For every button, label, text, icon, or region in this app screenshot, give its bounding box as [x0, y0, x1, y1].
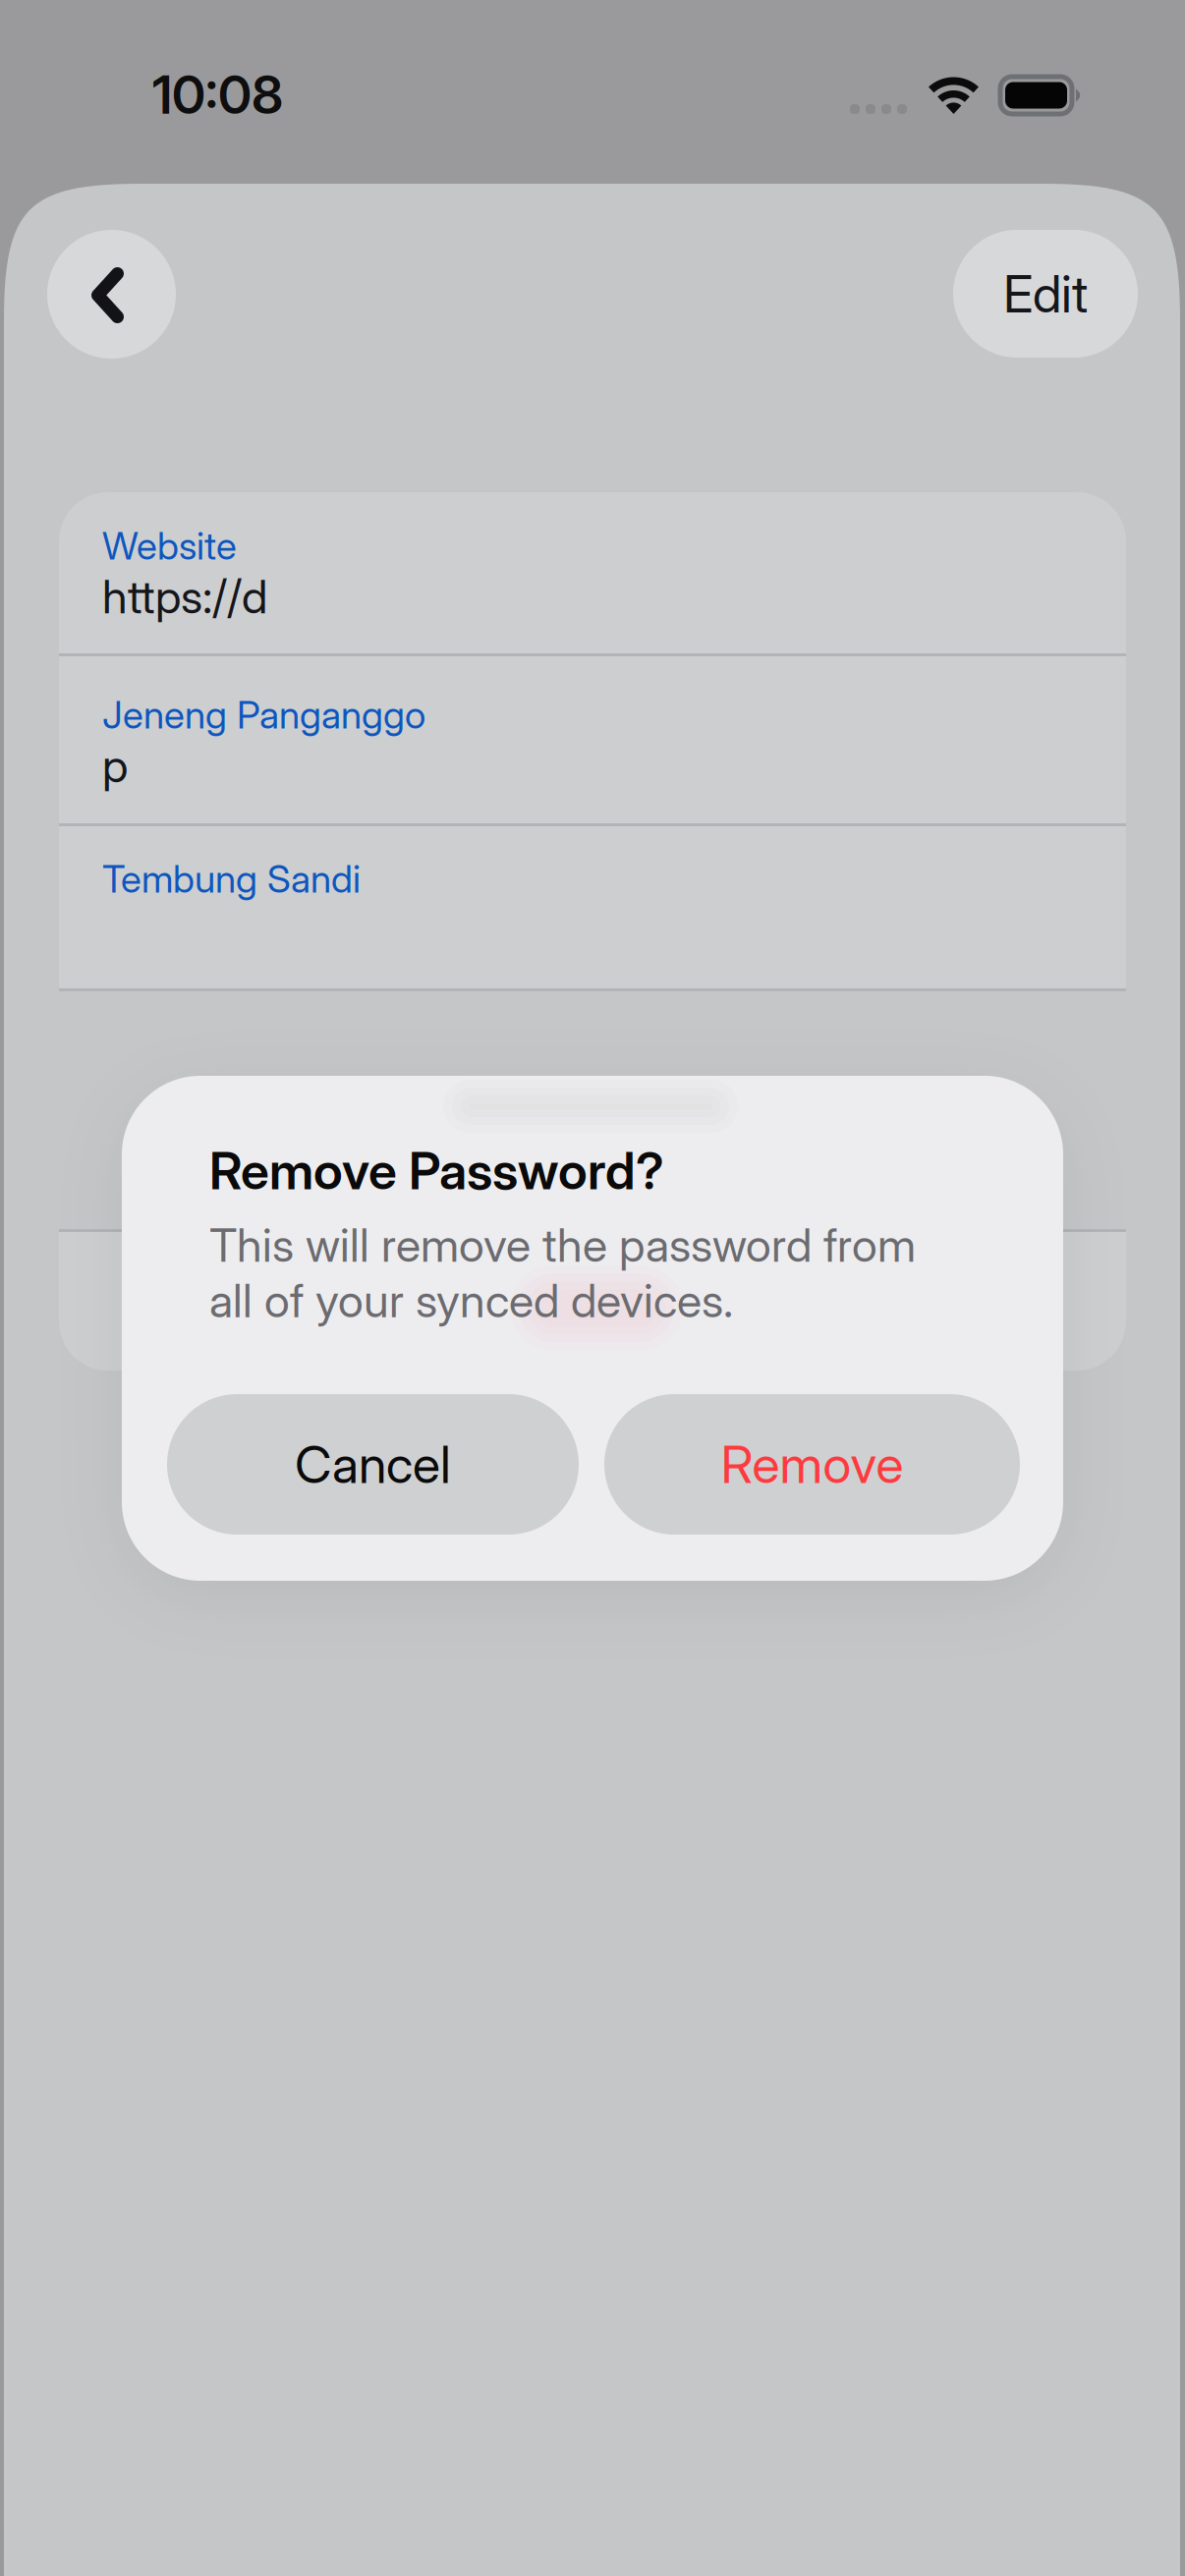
staticText: Cancel [295, 1433, 451, 1495]
staticText: Website [102, 523, 237, 569]
staticText: Edit [1003, 263, 1088, 325]
button[interactable]: Cancel [167, 1394, 579, 1535]
button[interactable]: Remove [604, 1394, 1020, 1535]
staticText: Remove [721, 1433, 903, 1495]
button[interactable]: Edit [953, 230, 1138, 358]
staticText: Jeneng Panganggo [102, 692, 425, 738]
staticText: p [102, 738, 128, 793]
staticText: Tembung Sandi [102, 856, 361, 902]
button[interactable]: Back [47, 230, 176, 359]
staticText: Remove Password? [209, 1140, 664, 1201]
staticText: This will remove the password from all o… [209, 1217, 916, 1328]
staticText: 10:08 [152, 63, 283, 126]
staticText: https://d [102, 569, 267, 624]
